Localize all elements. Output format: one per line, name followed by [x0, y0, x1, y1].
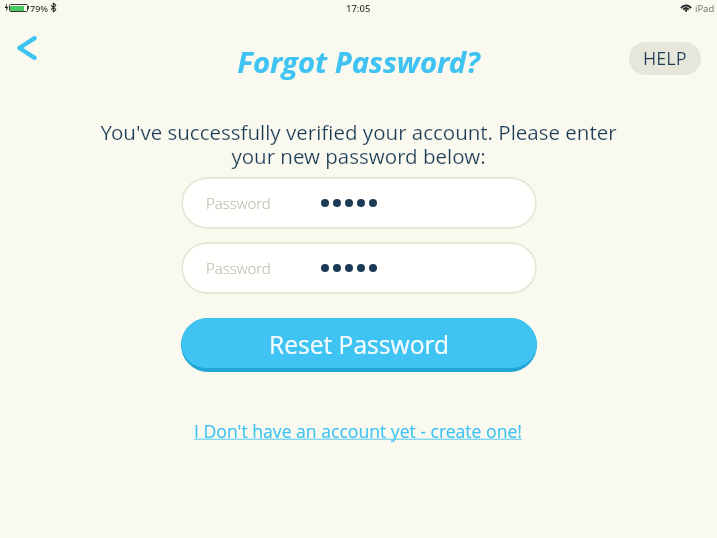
- staticText: Forgot Password?: [0, 42, 717, 82]
- button[interactable]: Reset Password: [181, 318, 537, 372]
- button[interactable]: Back: [3, 24, 50, 71]
- staticText: Password: [206, 258, 271, 278]
- button[interactable]: Password: [181, 177, 537, 229]
- button[interactable]: HELP: [629, 42, 701, 75]
- staticText: HELP: [643, 46, 687, 71]
- staticText: You've successfully verified your accoun…: [0, 118, 717, 170]
- staticText: Password: [206, 193, 271, 213]
- staticText: I Don't have an account yet - create one…: [194, 419, 523, 443]
- staticText: 79%: [30, 2, 49, 14]
- staticText: Reset Password: [269, 328, 450, 362]
- staticText: iPad: [695, 2, 715, 15]
- button[interactable]: I Don't have an account yet - create one…: [194, 419, 523, 443]
- button[interactable]: Password: [181, 242, 537, 294]
- staticText: 17:05: [346, 2, 371, 15]
